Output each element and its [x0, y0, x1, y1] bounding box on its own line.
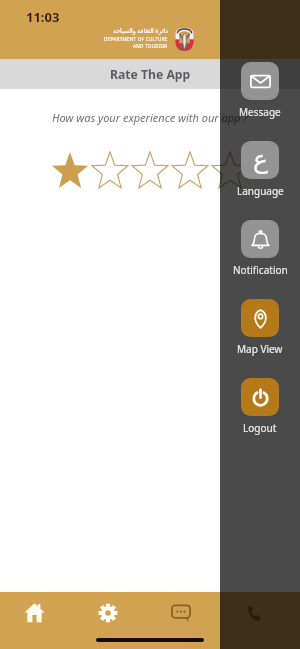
staticText: 11:03 — [26, 8, 60, 26]
button[interactable]: Home — [0, 592, 71, 633]
button[interactable] — [50, 151, 90, 189]
button[interactable] — [170, 151, 210, 189]
staticText: AND TOURISM — [133, 43, 168, 49]
staticText: Rate The App — [110, 66, 191, 83]
button[interactable]: Settings — [71, 592, 144, 633]
staticText: DEPARTMENT OF CULTURE — [104, 36, 168, 42]
button[interactable]: Logout — [220, 378, 300, 457]
staticText: Message — [239, 105, 281, 119]
staticText: Logout — [243, 421, 277, 435]
staticText: Map View — [237, 342, 283, 356]
staticText: دائرة الثقافة والسياحة — [113, 26, 168, 34]
staticText: Language — [237, 184, 284, 198]
staticText: How was your experience with our app ? — [0, 110, 300, 125]
button[interactable] — [90, 151, 130, 189]
button[interactable] — [210, 151, 250, 189]
button[interactable]: ع — [220, 141, 300, 220]
button[interactable]: Map View — [220, 299, 300, 378]
button[interactable]: Message — [220, 62, 300, 141]
button[interactable]: Messages — [144, 592, 217, 633]
button[interactable]: Call — [217, 592, 290, 633]
button[interactable] — [130, 151, 170, 189]
staticText: ع — [253, 145, 268, 174]
staticText: Notification — [233, 263, 288, 277]
button[interactable]: Notification — [220, 220, 300, 299]
